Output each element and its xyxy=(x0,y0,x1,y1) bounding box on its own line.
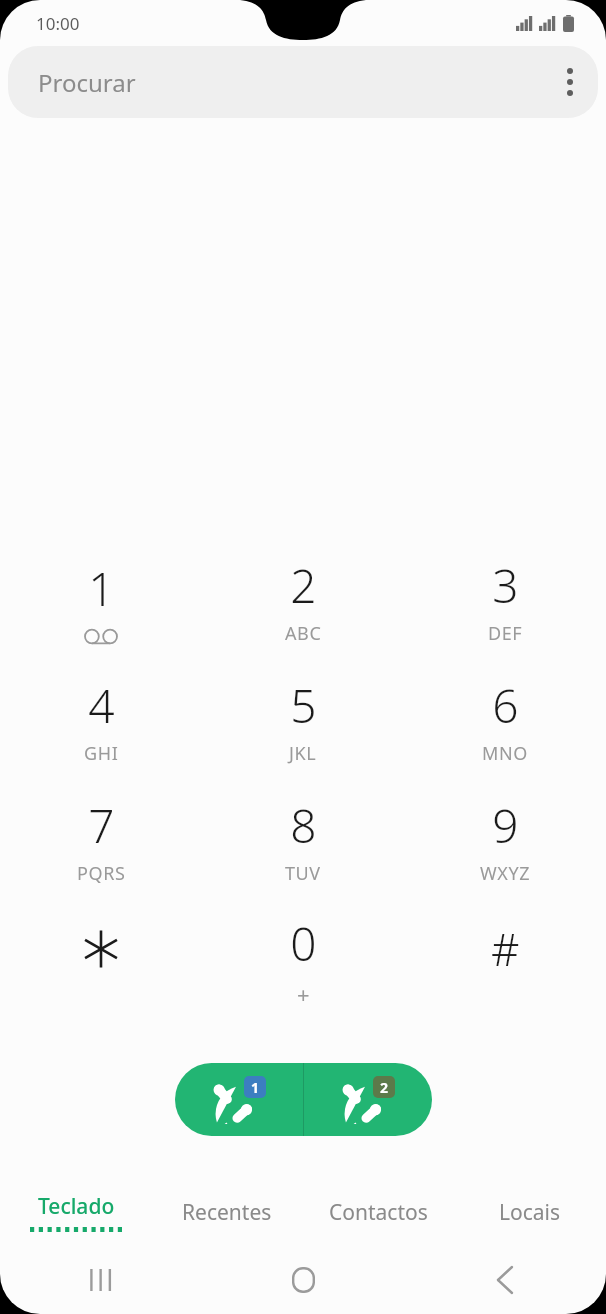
button[interactable]: 0 xyxy=(202,902,404,1022)
staticText: WXYZ xyxy=(480,861,531,886)
staticText: 1 xyxy=(251,1078,260,1097)
button[interactable] xyxy=(0,902,202,1022)
button[interactable]: 1 xyxy=(0,542,202,662)
staticText: Contactos xyxy=(329,1198,428,1227)
staticText: + xyxy=(297,979,311,1009)
button[interactable]: Teclado xyxy=(0,1179,151,1245)
staticText: 2 xyxy=(380,1078,389,1097)
staticText: 1 xyxy=(88,557,115,620)
button[interactable]: 6 xyxy=(404,662,606,782)
staticText: 3 xyxy=(492,554,519,617)
button[interactable]: Call with SIM 1 xyxy=(175,1063,303,1136)
button[interactable]: Recentes xyxy=(151,1179,302,1245)
staticText: 7 xyxy=(88,794,115,857)
button[interactable]: 9 xyxy=(404,782,606,902)
staticText: # xyxy=(491,919,520,979)
button[interactable]: Home xyxy=(202,1245,404,1314)
staticText: PQRS xyxy=(77,861,126,886)
staticText: JKL xyxy=(289,741,317,766)
button[interactable]: Procurar xyxy=(8,46,598,118)
button[interactable]: Call with SIM 2 xyxy=(304,1063,432,1136)
staticText: Locais xyxy=(499,1198,561,1227)
button[interactable]: Locais xyxy=(454,1179,606,1245)
staticText: Teclado xyxy=(38,1192,115,1221)
button[interactable]: Recent apps xyxy=(0,1245,202,1314)
staticText: 10:00 xyxy=(36,12,80,35)
button[interactable]: 5 xyxy=(202,662,404,782)
staticText: Procurar xyxy=(38,66,136,99)
button[interactable]: More options xyxy=(542,54,598,110)
staticText: 5 xyxy=(290,674,317,737)
button[interactable]: 3 xyxy=(404,542,606,662)
button[interactable]: # xyxy=(404,902,606,1022)
staticText: 6 xyxy=(492,674,519,737)
staticText: 8 xyxy=(290,794,317,857)
button[interactable]: 7 xyxy=(0,782,202,902)
staticText: 0 xyxy=(290,912,317,975)
staticText: 2 xyxy=(290,554,317,617)
button[interactable]: 2 xyxy=(202,542,404,662)
button[interactable]: Back xyxy=(404,1245,606,1314)
staticText: 9 xyxy=(492,794,519,857)
staticText: ABC xyxy=(285,621,322,646)
staticText: DEF xyxy=(488,621,523,646)
button[interactable]: 4 xyxy=(0,662,202,782)
staticText: MNO xyxy=(482,741,528,766)
staticText: TUV xyxy=(285,861,321,886)
staticText: 4 xyxy=(88,674,115,737)
button[interactable]: 8 xyxy=(202,782,404,902)
staticText: GHI xyxy=(84,741,119,766)
staticText: Recentes xyxy=(182,1198,272,1227)
button[interactable]: Contactos xyxy=(302,1179,454,1245)
